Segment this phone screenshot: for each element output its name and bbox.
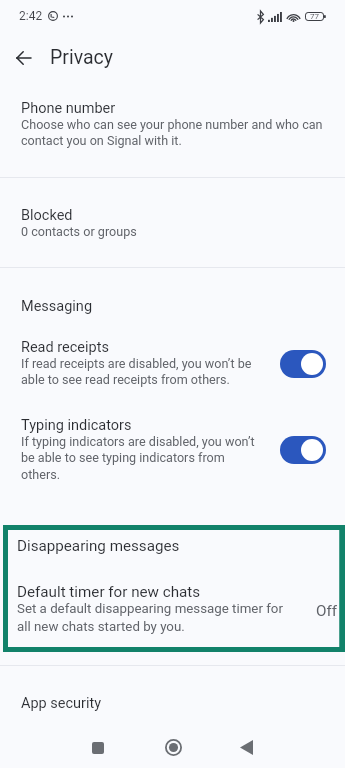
staticText: Disappearing messages xyxy=(17,537,180,555)
button[interactable]: Back xyxy=(225,726,268,768)
staticText: App security xyxy=(21,695,102,712)
staticText: Choose who can see your phone number and… xyxy=(21,117,325,149)
staticText: If typing indicators are disabled, you w… xyxy=(21,434,261,483)
staticText: Privacy xyxy=(50,46,113,69)
button[interactable]: Default timer for new chats xyxy=(3,567,345,652)
button[interactable]: Typing indicators xyxy=(0,403,345,498)
staticText: Read receipts xyxy=(21,339,109,356)
staticText: 0 contacts or groups xyxy=(21,224,137,239)
staticText: If read receipts are disabled, you won’t… xyxy=(21,356,261,388)
button[interactable]: Phone number xyxy=(0,86,345,177)
staticText: Default timer for new chats xyxy=(17,583,201,601)
staticText: Messaging xyxy=(21,298,93,315)
staticText: Phone number xyxy=(21,100,116,117)
staticText: Set a default disappearing message timer… xyxy=(17,601,285,634)
staticText: Typing indicators xyxy=(21,417,132,434)
button[interactable]: Read receipts xyxy=(0,327,345,403)
button[interactable]: Home xyxy=(152,726,195,768)
staticText: 77 xyxy=(310,12,319,21)
staticText: Blocked xyxy=(21,207,73,224)
button[interactable]: Navigate up xyxy=(5,39,43,77)
staticText: 2:42 xyxy=(19,9,43,23)
button[interactable]: Recent apps xyxy=(76,726,119,768)
button[interactable]: Blocked xyxy=(0,178,345,267)
staticText: Off xyxy=(316,602,338,620)
